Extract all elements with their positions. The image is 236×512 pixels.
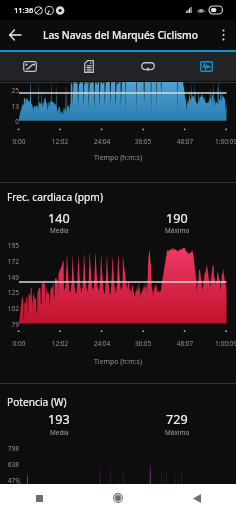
staticText: Tiempo (h:m:s) [0,357,236,366]
staticText: 102 [0,304,19,313]
button[interactable]: Map [0,52,59,81]
staticText: 36:05 [123,339,163,348]
staticText: 12:02 [40,339,80,348]
staticText: 0:00 [0,339,39,348]
staticText: Máximo [165,226,190,235]
button[interactable]: Recent apps [0,484,78,512]
button[interactable]: Laps [118,52,177,81]
staticText: 48:07 [165,339,205,348]
staticText: 11:36 [14,5,34,15]
staticText: 190 [166,210,188,227]
staticText: Las Navas del Marqués Ciclismo [43,28,198,42]
button[interactable]: Back [157,484,236,512]
button[interactable]: Home [78,484,157,512]
staticText: 48:07 [165,137,205,146]
staticText: 1:00:09 [206,339,236,348]
staticText: 172 [0,257,19,266]
staticText: Media [50,226,69,235]
button[interactable]: More options [210,20,236,50]
staticText: 24:04 [82,339,122,348]
staticText: 0 [0,117,19,126]
staticText: 798 [0,444,19,453]
staticText: 125 [0,288,19,297]
staticText: 1:00:09 [206,137,236,146]
staticText: 36:05 [123,137,163,146]
staticText: 195 [0,241,19,250]
button[interactable]: Summary [59,52,118,81]
staticText: 12:02 [40,137,80,146]
button[interactable]: Charts [177,52,236,81]
staticText: 638 [0,460,19,469]
staticText: 193 [48,411,70,428]
staticText: Frec. cardiaca (ppm) [7,190,103,204]
staticText: 140 [48,210,70,227]
staticText: Tiempo (h:m:s) [0,153,236,162]
staticText: Media [50,428,69,437]
staticText: Máximo [165,428,190,437]
staticText: 729 [166,411,188,428]
staticText: 24:04 [82,137,122,146]
staticText: 0:00 [0,137,39,146]
button[interactable]: Back [0,20,30,50]
staticText: Potencia (W) [7,395,67,409]
staticText: 13 [0,102,19,111]
staticText: 479 [0,476,19,485]
staticText: 149 [0,273,19,282]
staticText: 79 [0,320,19,329]
staticText: 25 [0,86,19,95]
